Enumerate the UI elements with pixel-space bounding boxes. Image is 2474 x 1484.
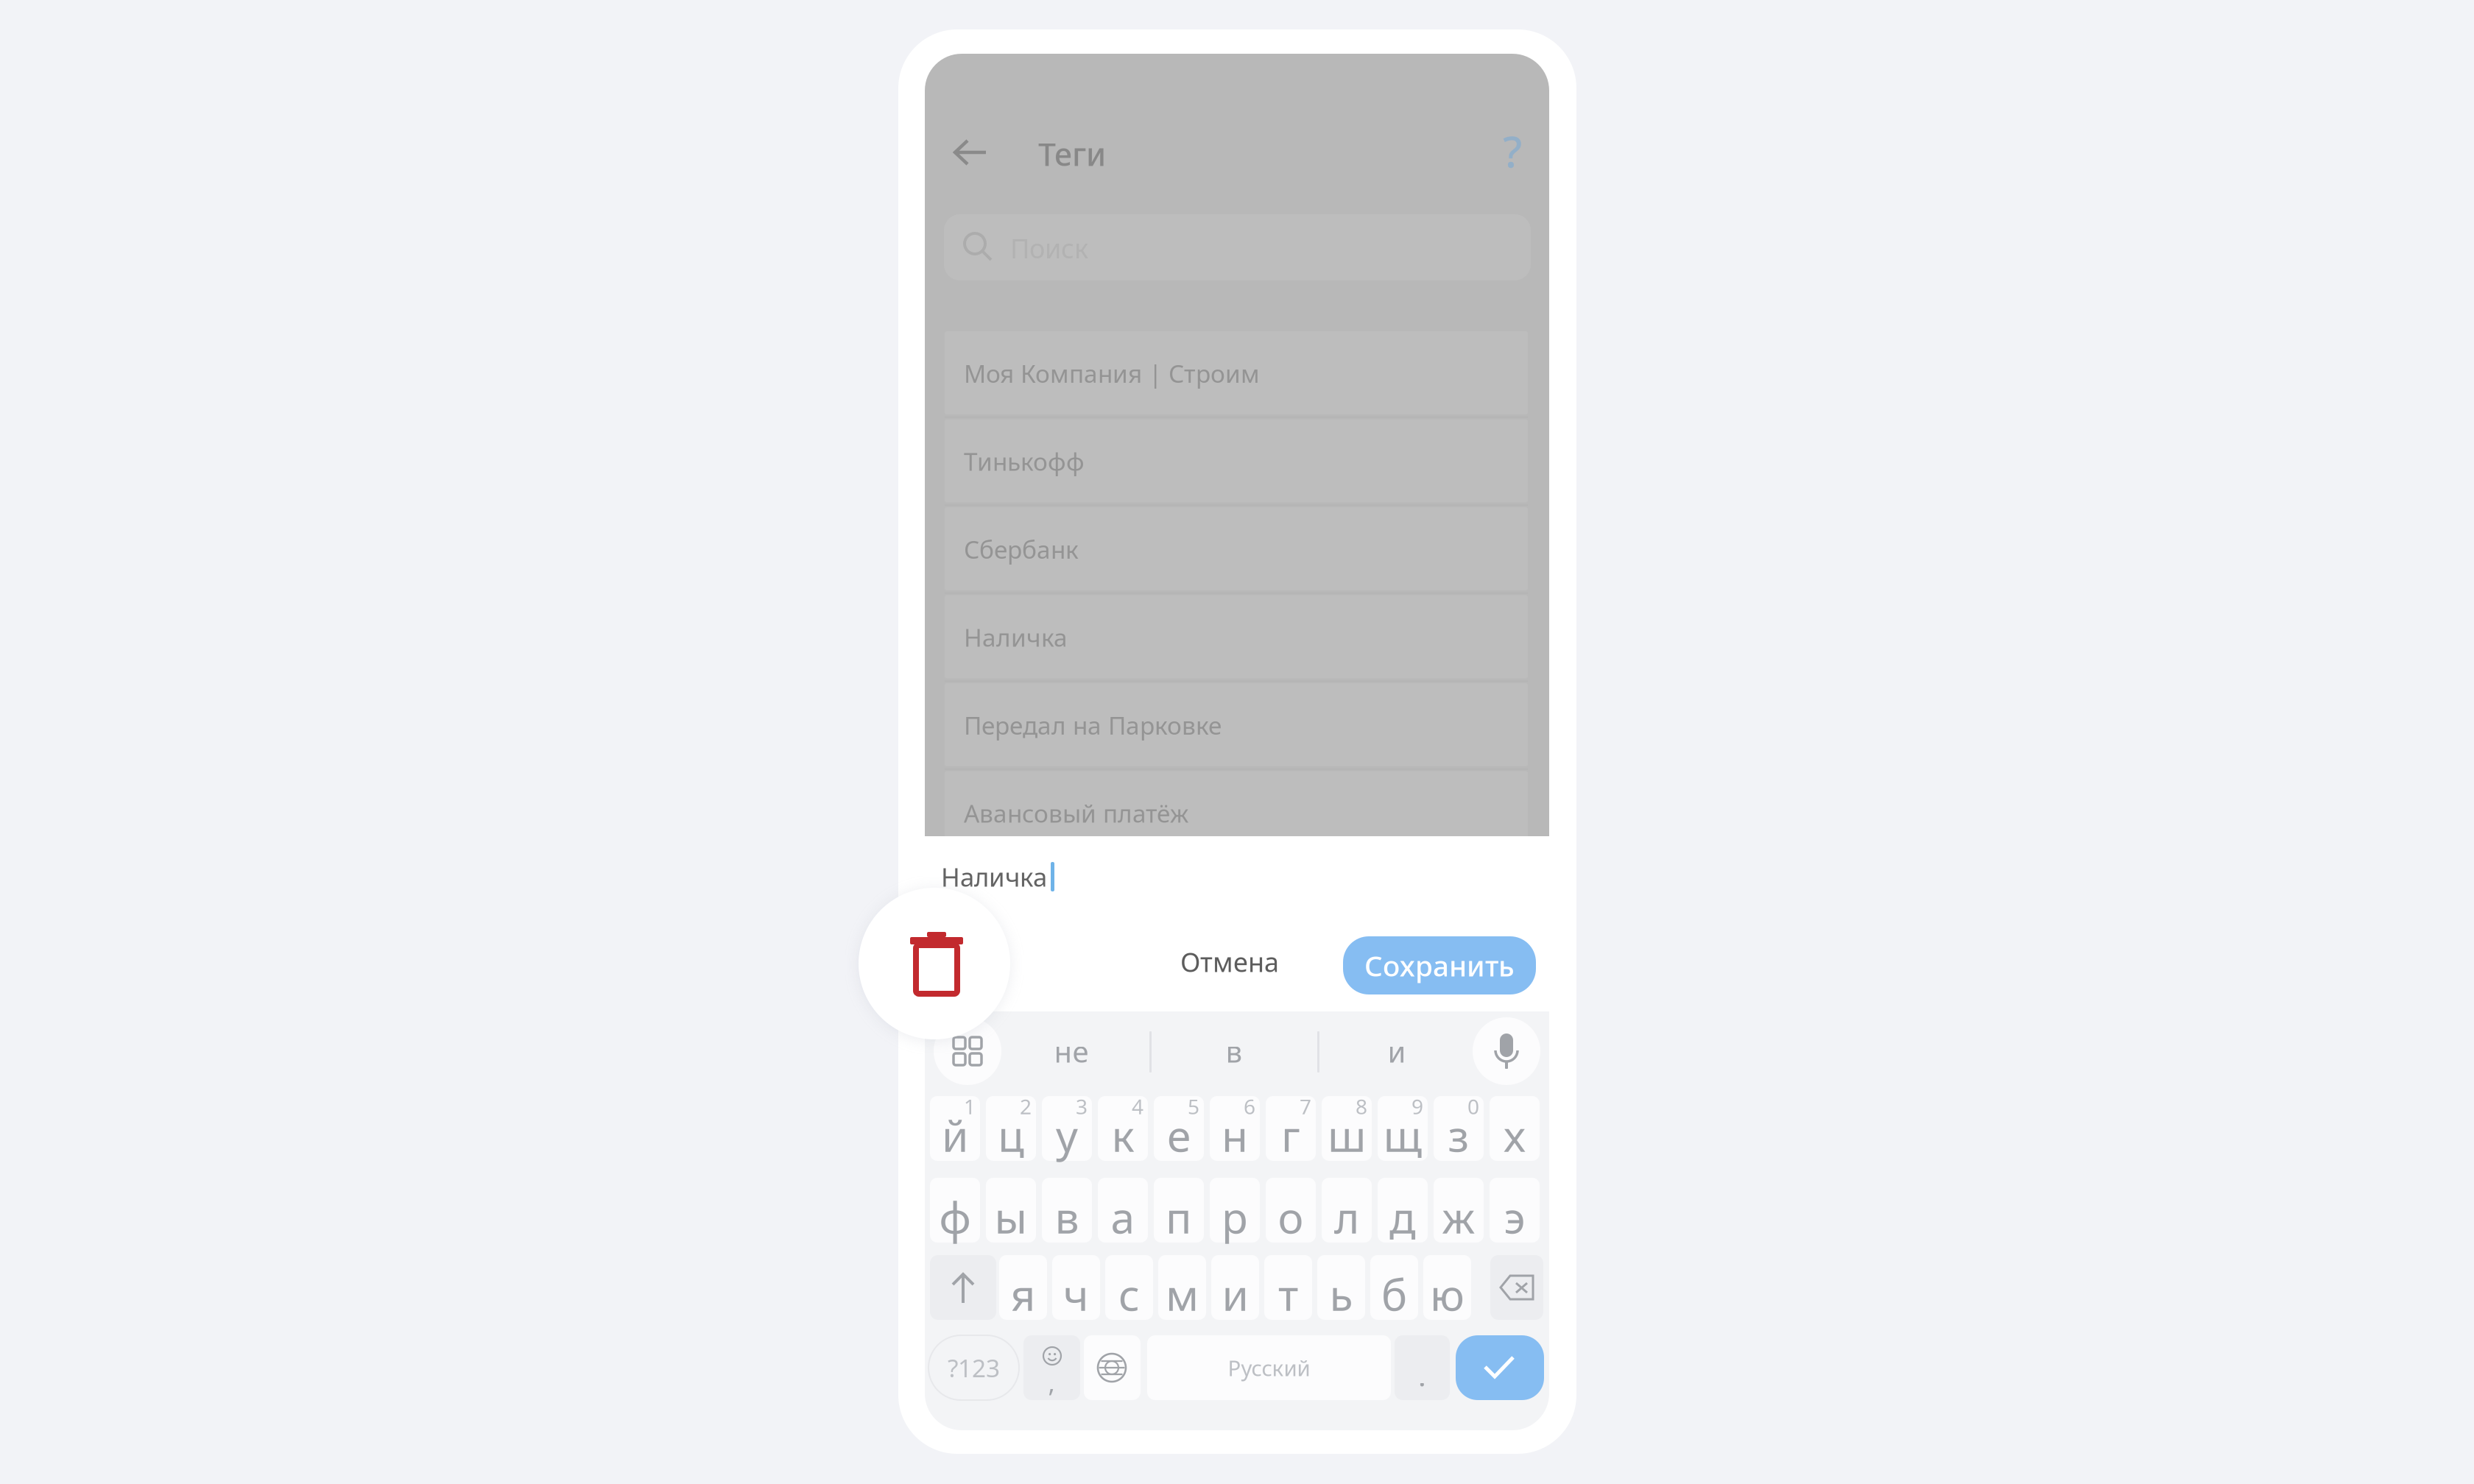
button[interactable]: ю bbox=[1423, 1255, 1471, 1320]
staticText: х bbox=[1504, 1106, 1526, 1164]
button[interactable]: с bbox=[1105, 1255, 1153, 1320]
button[interactable]: Моя Компания | Строим bbox=[945, 331, 1528, 414]
button[interactable]: Наличка bbox=[945, 595, 1528, 678]
button[interactable]: р bbox=[1210, 1178, 1260, 1243]
staticText: 3 bbox=[1076, 1093, 1088, 1120]
button[interactable]: Русский bbox=[1147, 1335, 1391, 1400]
staticText: и bbox=[1222, 1265, 1248, 1323]
button[interactable]: 7 bbox=[1266, 1096, 1316, 1161]
staticText: к bbox=[1111, 1106, 1134, 1164]
button[interactable]: о bbox=[1266, 1178, 1316, 1243]
staticText: й bbox=[942, 1106, 968, 1164]
button[interactable]: Сбербанк bbox=[945, 507, 1528, 590]
button[interactable]: Emoji bbox=[1023, 1335, 1080, 1400]
button[interactable]: . bbox=[1395, 1335, 1450, 1400]
button[interactable]: л bbox=[1322, 1178, 1372, 1243]
button[interactable]: ь bbox=[1317, 1255, 1365, 1320]
staticText: п bbox=[1166, 1188, 1192, 1245]
button[interactable]: Отмена bbox=[1163, 933, 1296, 991]
button[interactable]: Voice input bbox=[1473, 1017, 1540, 1085]
staticText: 4 bbox=[1132, 1093, 1143, 1120]
button[interactable]: Shift bbox=[930, 1255, 996, 1320]
button[interactable]: Help bbox=[1489, 121, 1536, 181]
button[interactable]: я bbox=[999, 1255, 1047, 1320]
staticText: ?123 bbox=[948, 1351, 1000, 1384]
staticText: у bbox=[1056, 1106, 1078, 1164]
button[interactable]: б bbox=[1370, 1255, 1418, 1320]
staticText: ю bbox=[1430, 1265, 1465, 1323]
staticText: Сбербанк bbox=[964, 533, 1079, 565]
staticText: ж bbox=[1442, 1188, 1475, 1245]
button[interactable]: а bbox=[1098, 1178, 1148, 1243]
staticText: ? bbox=[1503, 122, 1522, 180]
button[interactable]: ?123 bbox=[928, 1335, 1019, 1400]
button[interactable]: Change language bbox=[1084, 1335, 1141, 1400]
staticText: р bbox=[1222, 1188, 1248, 1245]
staticText: Тинькофф bbox=[964, 445, 1085, 478]
button[interactable]: ы bbox=[986, 1178, 1036, 1243]
staticText: ш bbox=[1328, 1106, 1366, 1164]
staticText: л bbox=[1334, 1188, 1359, 1245]
staticText: в bbox=[1055, 1188, 1079, 1245]
staticText: н bbox=[1222, 1106, 1248, 1164]
button[interactable]: 5 bbox=[1154, 1096, 1204, 1161]
staticText: 2 bbox=[1020, 1093, 1032, 1120]
button[interactable]: х bbox=[1490, 1096, 1540, 1161]
staticText: Моя Компания | Строим bbox=[964, 357, 1260, 390]
button[interactable]: 8 bbox=[1322, 1096, 1372, 1161]
staticText: Авансовый платёж bbox=[964, 797, 1188, 829]
button[interactable]: Тинькофф bbox=[945, 419, 1528, 502]
staticText: 6 bbox=[1244, 1093, 1255, 1120]
staticText: с bbox=[1118, 1265, 1140, 1323]
staticText: не bbox=[1054, 1032, 1089, 1071]
staticText: д bbox=[1389, 1188, 1416, 1245]
staticText: и bbox=[1388, 1032, 1406, 1071]
button[interactable]: Backspace bbox=[1490, 1255, 1543, 1320]
button[interactable]: э bbox=[1490, 1178, 1540, 1243]
staticText: т bbox=[1278, 1265, 1298, 1323]
button[interactable]: 4 bbox=[1098, 1096, 1148, 1161]
staticText: 5 bbox=[1188, 1093, 1199, 1120]
button[interactable]: Back bbox=[941, 119, 1012, 189]
button[interactable]: 0 bbox=[1434, 1096, 1484, 1161]
button[interactable]: м bbox=[1158, 1255, 1206, 1320]
button[interactable]: Сохранить bbox=[1343, 936, 1536, 994]
staticText: е bbox=[1167, 1106, 1191, 1164]
staticText: ф bbox=[939, 1188, 971, 1245]
button[interactable]: Delete tag bbox=[894, 919, 979, 1006]
staticText: Наличка bbox=[964, 621, 1068, 653]
staticText: ч bbox=[1063, 1265, 1089, 1323]
button[interactable]: п bbox=[1154, 1178, 1204, 1243]
button[interactable]: Передал на Парковке bbox=[945, 683, 1528, 766]
button[interactable]: Clipboard bbox=[934, 1017, 1001, 1085]
button[interactable]: 9 bbox=[1378, 1096, 1428, 1161]
staticText: 9 bbox=[1412, 1093, 1423, 1120]
button[interactable]: Done bbox=[1456, 1335, 1544, 1400]
button[interactable]: и bbox=[1211, 1255, 1259, 1320]
staticText: Отмена bbox=[1180, 944, 1279, 979]
staticText: 0 bbox=[1467, 1093, 1479, 1120]
button[interactable]: ч bbox=[1052, 1255, 1100, 1320]
staticText: ц bbox=[998, 1106, 1024, 1164]
button[interactable]: Авансовый платёж bbox=[945, 771, 1528, 854]
button[interactable]: т bbox=[1264, 1255, 1312, 1320]
staticText: м bbox=[1166, 1265, 1199, 1323]
staticText: а bbox=[1111, 1188, 1135, 1245]
staticText: . bbox=[1418, 1355, 1426, 1395]
button[interactable]: д bbox=[1378, 1178, 1428, 1243]
button[interactable]: ф bbox=[930, 1178, 980, 1243]
staticText: Наличка bbox=[941, 860, 1047, 894]
button[interactable]: 3 bbox=[1042, 1096, 1092, 1161]
button[interactable]: 6 bbox=[1210, 1096, 1260, 1161]
button[interactable]: 2 bbox=[986, 1096, 1036, 1161]
staticText: 8 bbox=[1356, 1093, 1367, 1120]
staticText: щ bbox=[1383, 1106, 1422, 1164]
staticText: Теги bbox=[1038, 133, 1106, 175]
staticText: Поиск bbox=[1010, 230, 1088, 266]
staticText: о bbox=[1278, 1188, 1304, 1245]
staticText: ь bbox=[1329, 1265, 1353, 1323]
button[interactable]: ж bbox=[1434, 1178, 1484, 1243]
button[interactable]: 1 bbox=[930, 1096, 980, 1161]
button[interactable]: в bbox=[1042, 1178, 1092, 1243]
